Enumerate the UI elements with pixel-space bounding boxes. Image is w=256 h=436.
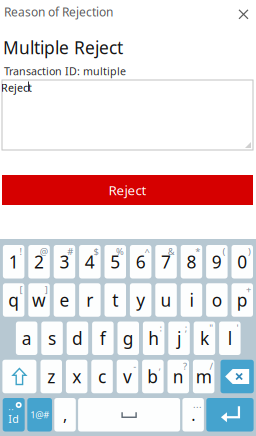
staticText: c	[98, 365, 106, 388]
button[interactable]: m	[193, 360, 214, 393]
staticText: d	[72, 327, 83, 350]
staticText: Reject	[1, 80, 32, 95]
staticText: k	[200, 327, 209, 350]
button[interactable]: e	[54, 283, 75, 317]
button[interactable]: 3	[54, 245, 75, 278]
staticText: j	[177, 327, 181, 350]
staticText: u	[160, 288, 171, 311]
staticText: -	[133, 360, 136, 372]
staticText: 3	[59, 250, 69, 273]
button[interactable]: a	[16, 321, 37, 355]
button[interactable]: Backspace	[220, 360, 254, 393]
staticText: ..	[8, 400, 14, 413]
button[interactable]: Shift	[2, 360, 36, 393]
staticText: v	[123, 365, 132, 388]
button[interactable]: g	[117, 321, 139, 355]
staticText: s	[48, 327, 56, 350]
staticText: 4	[85, 250, 95, 273]
staticText: 9	[212, 250, 222, 273]
staticText: "	[209, 322, 213, 334]
button[interactable]: Symbols	[27, 398, 52, 431]
staticText: w	[32, 288, 46, 311]
button[interactable]: k	[194, 321, 215, 355]
staticText: i	[189, 288, 193, 311]
button[interactable]: Return	[206, 398, 254, 431]
button[interactable]: Reject	[2, 175, 253, 205]
staticText: )	[248, 245, 251, 258]
staticText: l	[228, 327, 232, 350]
button[interactable]: 7	[155, 245, 177, 278]
staticText: #	[67, 245, 73, 258]
button[interactable]: j	[168, 321, 190, 355]
staticText: 2	[34, 250, 44, 273]
button[interactable]: 2	[28, 245, 50, 278]
staticText: ;	[185, 322, 188, 334]
button[interactable]: Input method	[3, 398, 25, 431]
staticText: 1@#	[30, 409, 49, 421]
staticText: q	[8, 288, 19, 311]
staticText: :	[159, 322, 162, 334]
button[interactable]: l	[219, 321, 241, 355]
staticText: [	[19, 284, 22, 296]
button[interactable]: o	[206, 283, 228, 317]
button[interactable]: 1	[3, 245, 24, 278]
staticText: Transaction ID: multiple	[4, 64, 126, 78]
staticText: ,	[159, 360, 162, 372]
staticText: ?	[183, 360, 187, 372]
button[interactable]: f	[92, 321, 114, 355]
button[interactable]: 4	[79, 245, 101, 278]
staticText: y	[136, 288, 145, 311]
staticText: o	[212, 288, 222, 311]
button[interactable]: 0	[231, 245, 253, 278]
button[interactable]: b	[142, 360, 164, 393]
staticText: m	[196, 365, 212, 388]
button[interactable]: d	[67, 321, 88, 355]
button[interactable]: h	[143, 321, 164, 355]
button[interactable]: z	[40, 360, 62, 393]
staticText: 5	[110, 250, 120, 273]
staticText: ,	[63, 404, 67, 425]
button[interactable]: r	[79, 283, 101, 317]
staticText: e	[59, 288, 69, 311]
button[interactable]: v	[117, 360, 138, 393]
staticText: @	[40, 245, 48, 258]
staticText: a	[22, 327, 32, 350]
button[interactable]: ,	[54, 398, 76, 431]
button[interactable]: x	[66, 360, 87, 393]
button[interactable]: n	[167, 360, 189, 393]
staticText: Reject	[108, 181, 146, 199]
button[interactable]: s	[41, 321, 63, 355]
button[interactable]: 5	[104, 245, 126, 278]
staticText: t	[112, 288, 118, 311]
staticText: ...	[193, 398, 202, 411]
staticText: *	[195, 245, 200, 258]
staticText: Reason of Rejection	[4, 4, 113, 20]
button[interactable]: q	[3, 283, 24, 317]
button[interactable]: 6	[130, 245, 151, 278]
button[interactable]: i	[181, 283, 202, 317]
button[interactable]: p	[231, 283, 253, 317]
button[interactable]: u	[155, 283, 177, 317]
staticText: 8	[186, 250, 196, 273]
staticText: '	[237, 322, 239, 334]
button[interactable]: 8	[181, 245, 202, 278]
staticText: Multiple Reject	[3, 36, 123, 59]
button[interactable]: c	[91, 360, 113, 393]
button[interactable]: w	[28, 283, 50, 317]
staticText: 7	[161, 250, 171, 273]
staticText: ]	[45, 284, 48, 296]
staticText: ^	[144, 245, 149, 258]
staticText: (	[223, 245, 226, 258]
button[interactable]: 9	[206, 245, 228, 278]
button[interactable]: Space	[78, 398, 180, 431]
button[interactable]: y	[130, 283, 151, 317]
button[interactable]: Close	[232, 3, 254, 25]
staticText: 6	[136, 250, 146, 273]
staticText: z	[47, 365, 55, 388]
button[interactable]: .	[182, 398, 204, 431]
staticText: n	[173, 365, 184, 388]
staticText: b	[147, 365, 158, 388]
staticText: $	[94, 245, 99, 258]
button[interactable]: t	[104, 283, 126, 317]
staticText: 0	[237, 250, 247, 273]
